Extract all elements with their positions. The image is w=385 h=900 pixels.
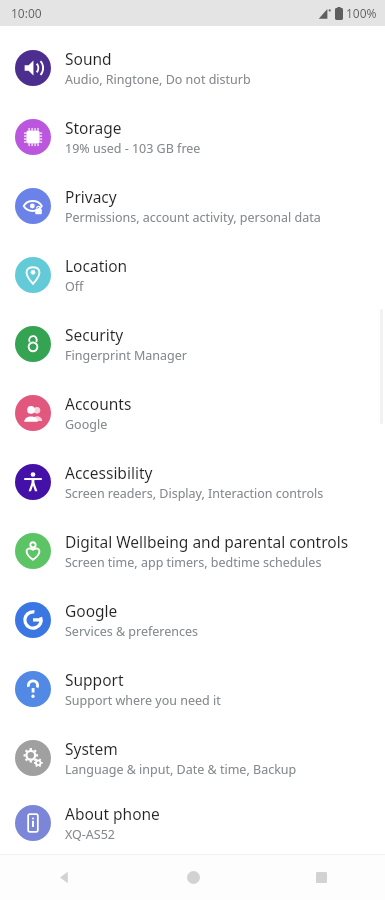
staticText: Location bbox=[65, 255, 128, 276]
staticText: Google bbox=[65, 416, 108, 433]
staticText: Fingerprint Manager bbox=[65, 347, 187, 364]
button[interactable]: Recent apps bbox=[257, 855, 385, 900]
staticText: Sound bbox=[65, 48, 112, 69]
staticText: Support where you need it bbox=[65, 692, 221, 709]
staticText: Support bbox=[65, 669, 124, 690]
button[interactable]: Storage bbox=[0, 102, 385, 171]
button[interactable]: Home bbox=[129, 855, 257, 900]
staticText: Google bbox=[65, 600, 118, 621]
staticText: Screen time, app timers, bedtime schedul… bbox=[65, 554, 322, 571]
staticText: XQ-AS52 bbox=[65, 826, 116, 843]
button[interactable]: Accounts bbox=[0, 378, 385, 447]
button[interactable]: Location bbox=[0, 240, 385, 309]
button[interactable]: Accessibility bbox=[0, 447, 385, 516]
staticText: Services & preferences bbox=[65, 623, 199, 640]
button[interactable]: Google bbox=[0, 585, 385, 654]
button[interactable]: Digital Wellbeing and parental controls bbox=[0, 516, 385, 585]
staticText: Digital Wellbeing and parental controls bbox=[65, 531, 349, 552]
staticText: 19% used - 103 GB free bbox=[65, 140, 201, 157]
staticText: Accounts bbox=[65, 393, 132, 414]
staticText: Security bbox=[65, 324, 124, 345]
button[interactable]: Sound bbox=[0, 33, 385, 102]
button[interactable]: Support bbox=[0, 654, 385, 723]
button[interactable]: System bbox=[0, 723, 385, 792]
button[interactable]: About phone bbox=[0, 792, 385, 854]
button[interactable]: Back bbox=[0, 855, 129, 900]
staticText: Audio, Ringtone, Do not disturb bbox=[65, 71, 251, 88]
staticText: Off bbox=[65, 278, 84, 295]
staticText: Accessibility bbox=[65, 462, 153, 483]
staticText: Permissions, account activity, personal … bbox=[65, 209, 321, 226]
staticText: System bbox=[65, 738, 118, 759]
button[interactable]: Privacy bbox=[0, 171, 385, 240]
staticText: 10:00 bbox=[11, 5, 42, 21]
staticText: Language & input, Date & time, Backup bbox=[65, 761, 297, 778]
staticText: Screen readers, Display, Interaction con… bbox=[65, 485, 324, 502]
button[interactable]: Security bbox=[0, 309, 385, 378]
staticText: Storage bbox=[65, 117, 122, 138]
staticText: Privacy bbox=[65, 186, 117, 207]
staticText: About phone bbox=[65, 803, 160, 824]
staticText: 100% bbox=[346, 5, 377, 21]
